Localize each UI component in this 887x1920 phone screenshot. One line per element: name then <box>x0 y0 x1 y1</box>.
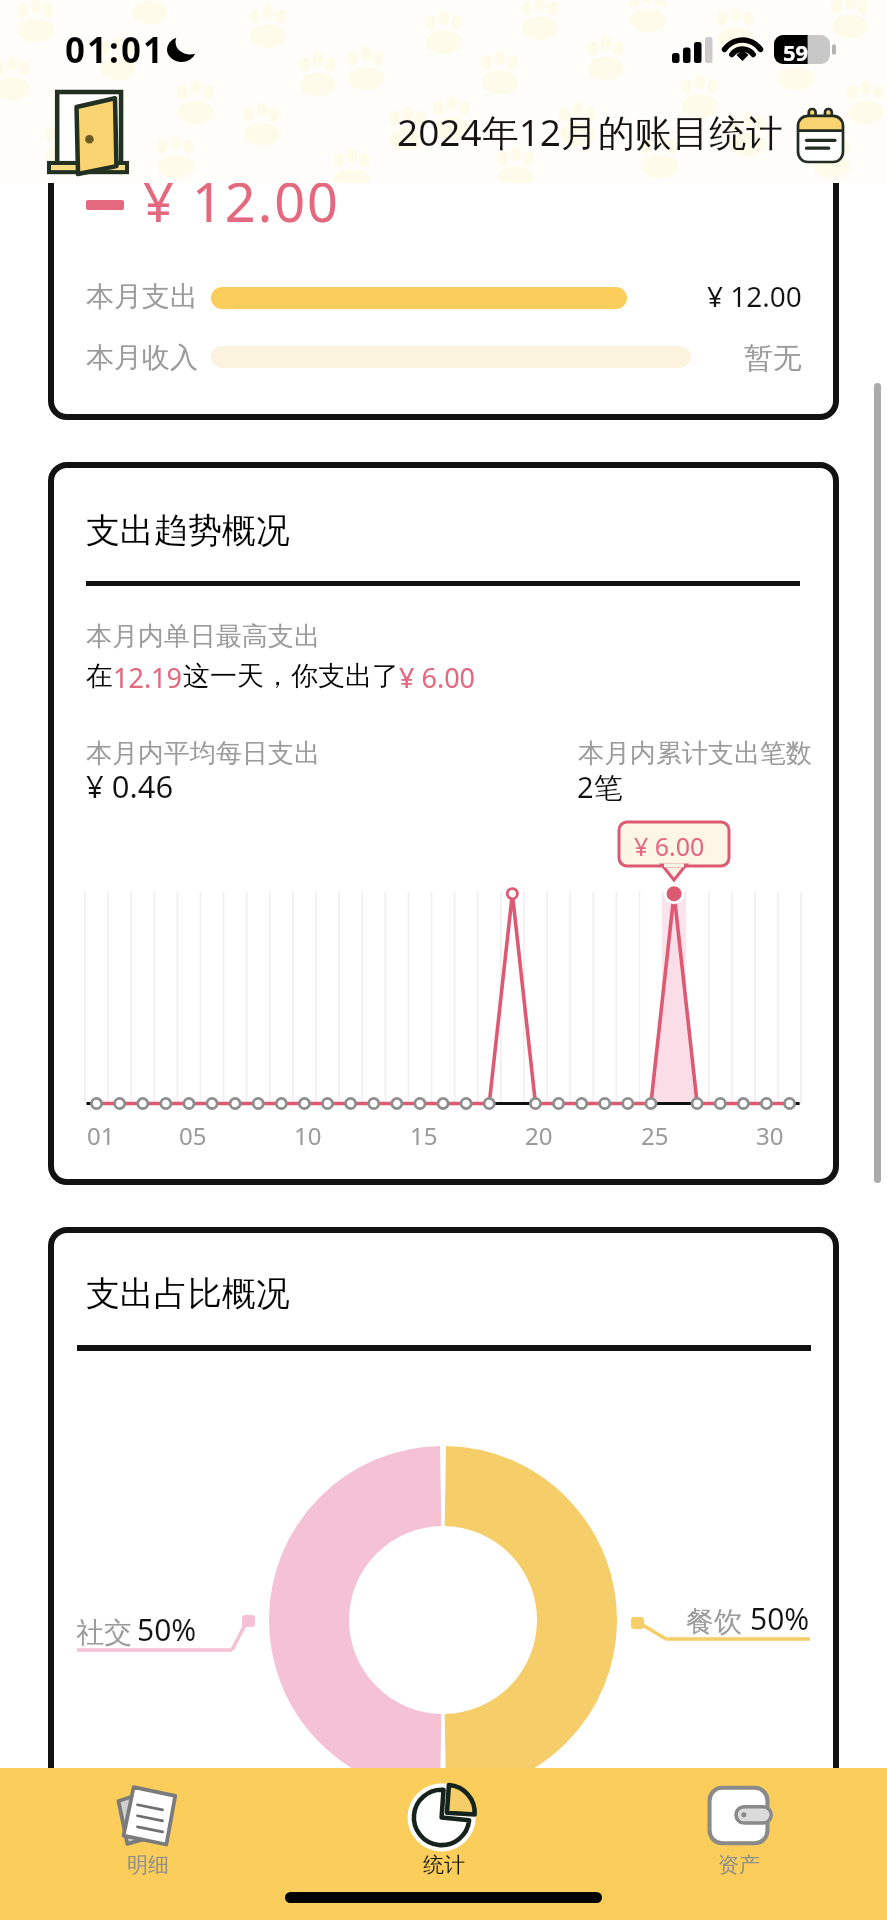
staticText: 59 <box>783 37 809 66</box>
staticText: 暂无 <box>744 340 802 377</box>
staticText: 01 <box>87 1119 115 1152</box>
staticText: 支出占比概况 <box>86 1272 290 1315</box>
staticText: 本月支出 <box>86 279 198 314</box>
staticText: 01:01 <box>65 26 165 74</box>
button[interactable]: Back <box>49 91 127 174</box>
staticText: ¥ 0.46 <box>86 765 174 807</box>
staticText: 这一天，你支出了 <box>183 659 399 693</box>
staticText: 2024年12月的账目统计 <box>397 106 783 157</box>
staticText: 15 <box>410 1119 438 1152</box>
button[interactable]: 统计 <box>296 1768 592 1886</box>
staticText: 本月内单日最高支出 <box>86 620 320 653</box>
staticText: 统计 <box>423 1852 465 1878</box>
button[interactable]: Select month <box>798 109 843 162</box>
staticText: ¥ 12.00 <box>143 183 340 238</box>
staticText: 2笔 <box>577 767 623 807</box>
staticText: 12.19 <box>113 659 183 696</box>
staticText: 餐饮 <box>686 1604 742 1639</box>
staticText: ¥ 6.00 <box>399 659 476 696</box>
staticText: 05 <box>179 1119 207 1152</box>
staticText: ¥ 6.00 <box>634 829 705 863</box>
staticText: 10 <box>294 1119 322 1152</box>
staticText: 50% <box>137 1609 197 1650</box>
staticText: 20 <box>525 1119 553 1152</box>
staticText: 明细 <box>127 1852 169 1878</box>
staticText: 30 <box>756 1119 784 1152</box>
staticText: 本月内平均每日支出 <box>86 737 320 770</box>
staticText: 在 <box>86 659 113 693</box>
button[interactable]: 明细 <box>0 1768 296 1886</box>
staticText: 支出趋势概况 <box>86 509 290 552</box>
staticText: 50% <box>750 1598 810 1639</box>
staticText: 本月收入 <box>86 340 198 375</box>
button[interactable]: 资产 <box>591 1768 887 1886</box>
staticText: ¥ 12.00 <box>707 277 802 315</box>
staticText: 25 <box>641 1119 669 1152</box>
staticText: 社交 <box>76 1615 132 1650</box>
staticText: 本月内累计支出笔数 <box>578 737 812 770</box>
staticText: 资产 <box>718 1852 760 1878</box>
